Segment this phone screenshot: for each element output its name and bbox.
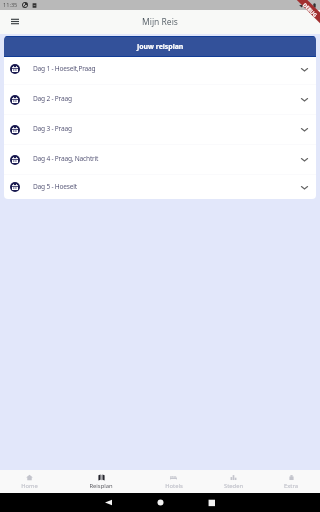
staticText: Dag 2 - Praag xyxy=(33,94,72,103)
staticText: Home xyxy=(21,482,38,490)
button[interactable]: Reisplan xyxy=(59,470,143,493)
staticText: Jouw reisplan xyxy=(137,42,184,51)
button[interactable]: Hotels xyxy=(143,470,204,493)
staticText: Dag 3 - Praag xyxy=(33,124,72,133)
staticText: Dag 5 - Hoeselt xyxy=(33,182,77,191)
staticText: Mijn Reis xyxy=(142,16,178,28)
button[interactable]: Dag 4 - Praag, Nachtrit xyxy=(4,145,316,174)
staticText: DEBUG xyxy=(301,2,319,19)
staticText: 11:35 xyxy=(3,1,18,9)
button[interactable]: Menu xyxy=(5,14,21,30)
button[interactable]: Dag 5 - Hoeselt xyxy=(4,175,316,199)
button[interactable]: Dag 1 - Hoeselt,Praag xyxy=(4,54,316,84)
staticText: Hotels xyxy=(165,482,183,490)
staticText: Dag 1 - Hoeselt,Praag xyxy=(33,64,96,73)
button[interactable]: Dag 2 - Praag xyxy=(4,85,316,114)
staticText: Extra xyxy=(284,482,298,490)
staticText: Reisplan xyxy=(89,482,113,490)
button[interactable]: Steden xyxy=(204,470,262,493)
staticText: Steden xyxy=(224,482,243,490)
button[interactable]: Home xyxy=(0,470,59,493)
button[interactable]: Dag 3 - Praag xyxy=(4,115,316,144)
button[interactable]: Jouw reisplan xyxy=(4,36,316,57)
button[interactable]: Extra xyxy=(262,470,320,493)
staticText: Dag 4 - Praag, Nachtrit xyxy=(33,154,99,163)
